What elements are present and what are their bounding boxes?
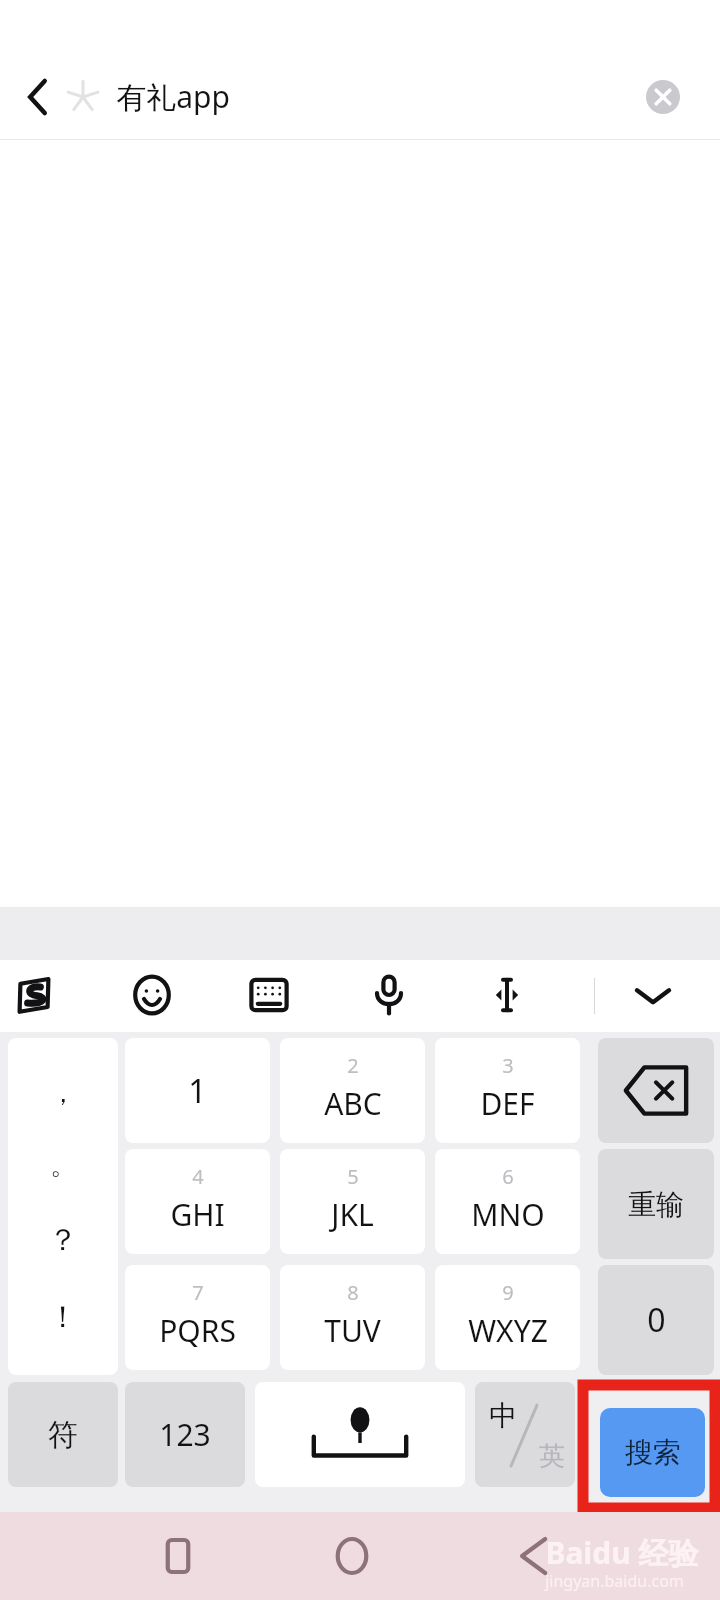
staticText: WXYZ <box>468 1310 548 1351</box>
button[interactable]: ， <box>8 1038 118 1375</box>
button[interactable]: 1 <box>125 1038 270 1143</box>
staticText: GHI <box>170 1194 225 1235</box>
button[interactable]: Home <box>320 1512 384 1600</box>
button[interactable]: Backspace <box>598 1038 714 1143</box>
button[interactable]: Keyboard layout <box>242 968 296 1022</box>
button[interactable]: 5 <box>280 1149 425 1254</box>
staticText: JKL <box>331 1194 374 1235</box>
staticText: TUV <box>324 1310 381 1351</box>
button[interactable]: 2 <box>280 1038 425 1143</box>
button[interactable]: Hide keyboard <box>619 972 687 1020</box>
staticText: 符 <box>48 1416 78 1454</box>
staticText: 2 <box>347 1052 359 1079</box>
button[interactable]: Back <box>503 1512 567 1600</box>
staticText: ！ <box>48 1298 78 1336</box>
staticText: 7 <box>192 1279 204 1306</box>
staticText: 123 <box>159 1414 211 1455</box>
button[interactable]: 3 <box>435 1038 580 1143</box>
staticText: 1 <box>188 1069 207 1113</box>
staticText: 英 <box>539 1440 565 1473</box>
staticText: 4 <box>192 1163 204 1190</box>
staticText: 有礼app <box>116 76 230 117</box>
button[interactable]: Clear <box>639 73 687 121</box>
staticText: 中 <box>489 1398 517 1433</box>
staticText: 重输 <box>628 1187 684 1222</box>
button[interactable]: 搜索 <box>600 1408 705 1497</box>
button[interactable]: 中 <box>475 1382 575 1487</box>
button[interactable]: 0 <box>598 1265 714 1375</box>
staticText: 5 <box>347 1163 359 1190</box>
staticText: MNO <box>471 1194 545 1235</box>
button[interactable]: 123 <box>125 1382 245 1487</box>
button[interactable]: Voice input <box>362 968 416 1022</box>
button[interactable]: 7 <box>125 1265 270 1370</box>
button[interactable]: Space <box>255 1382 465 1487</box>
button[interactable]: Sogou input <box>7 968 61 1022</box>
button[interactable]: 符 <box>8 1382 118 1487</box>
button[interactable]: 6 <box>435 1149 580 1254</box>
staticText: DEF <box>480 1083 535 1124</box>
staticText: 9 <box>502 1279 514 1306</box>
button[interactable]: Move cursor <box>480 968 534 1022</box>
button[interactable]: 9 <box>435 1265 580 1370</box>
button[interactable]: Emoji <box>125 968 179 1022</box>
button[interactable]: Back <box>10 62 66 132</box>
staticText: 8 <box>347 1279 359 1306</box>
button[interactable]: Recents <box>146 1512 210 1600</box>
staticText: ？ <box>48 1221 78 1259</box>
staticText: ， <box>50 1077 76 1110</box>
staticText: jingyan.baidu.com <box>545 1570 684 1592</box>
staticText: 6 <box>502 1163 514 1190</box>
button[interactable]: 4 <box>125 1149 270 1254</box>
staticText: 3 <box>502 1052 514 1079</box>
staticText: ABC <box>324 1083 382 1124</box>
staticText: Baidu 经验 <box>545 1532 699 1573</box>
staticText: 0 <box>647 1298 666 1342</box>
button[interactable]: 重输 <box>598 1149 714 1259</box>
button[interactable]: 8 <box>280 1265 425 1370</box>
staticText: 。 <box>50 1149 76 1182</box>
staticText: 搜索 <box>625 1435 681 1470</box>
staticText: PQRS <box>159 1310 236 1351</box>
